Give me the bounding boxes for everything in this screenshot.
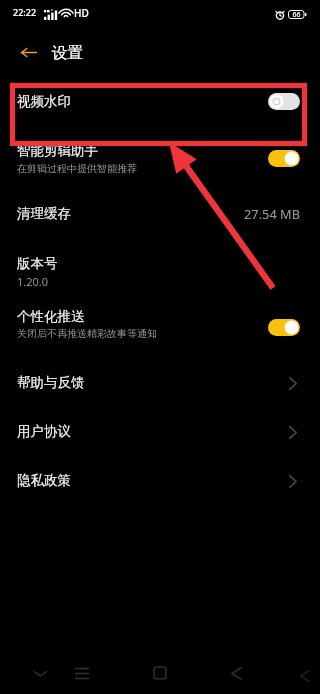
staticText: 隐私政策 xyxy=(17,472,71,489)
button[interactable]: Switch on xyxy=(268,319,300,336)
staticText: 帮助与反馈 xyxy=(17,374,85,391)
button[interactable]: Back xyxy=(291,662,319,690)
button[interactable]: Back xyxy=(14,38,42,66)
staticText: 视频水印 xyxy=(17,93,71,110)
button[interactable] xyxy=(0,128,320,180)
button[interactable] xyxy=(0,408,320,456)
button[interactable]: Home xyxy=(146,659,174,687)
staticText: 智能剪辑助手 xyxy=(17,142,98,159)
button[interactable]: Switch off xyxy=(268,93,300,110)
button[interactable]: Back xyxy=(222,659,250,687)
staticText: 66 xyxy=(292,10,301,19)
button[interactable]: Recent apps xyxy=(68,659,96,687)
button[interactable]: Switch on xyxy=(268,150,300,167)
button[interactable]: Open xyxy=(282,470,304,492)
button[interactable]: Open xyxy=(282,421,304,443)
button[interactable] xyxy=(0,456,320,504)
button[interactable]: Open xyxy=(282,372,304,394)
button[interactable] xyxy=(0,190,320,236)
staticText: 个性化推送 xyxy=(17,308,85,325)
staticText: 设置 xyxy=(52,43,83,63)
button[interactable] xyxy=(0,358,320,406)
staticText: 27.54 MB xyxy=(244,205,300,222)
button[interactable] xyxy=(0,293,320,345)
staticText: 22:22 xyxy=(13,6,37,18)
button[interactable] xyxy=(0,78,320,124)
staticText: HD xyxy=(74,6,89,20)
staticText: 版本号 xyxy=(17,255,58,272)
button[interactable] xyxy=(0,240,320,292)
staticText: 清理缓存 xyxy=(17,205,71,222)
staticText: 关闭后不再推送精彩故事等通知 xyxy=(17,327,157,340)
button[interactable]: Collapse keyboard xyxy=(26,659,54,687)
staticText: 用户协议 xyxy=(17,423,71,440)
staticText: 1.20.0 xyxy=(17,274,49,289)
staticText: 在剪辑过程中提供智能推荐 xyxy=(17,162,137,175)
